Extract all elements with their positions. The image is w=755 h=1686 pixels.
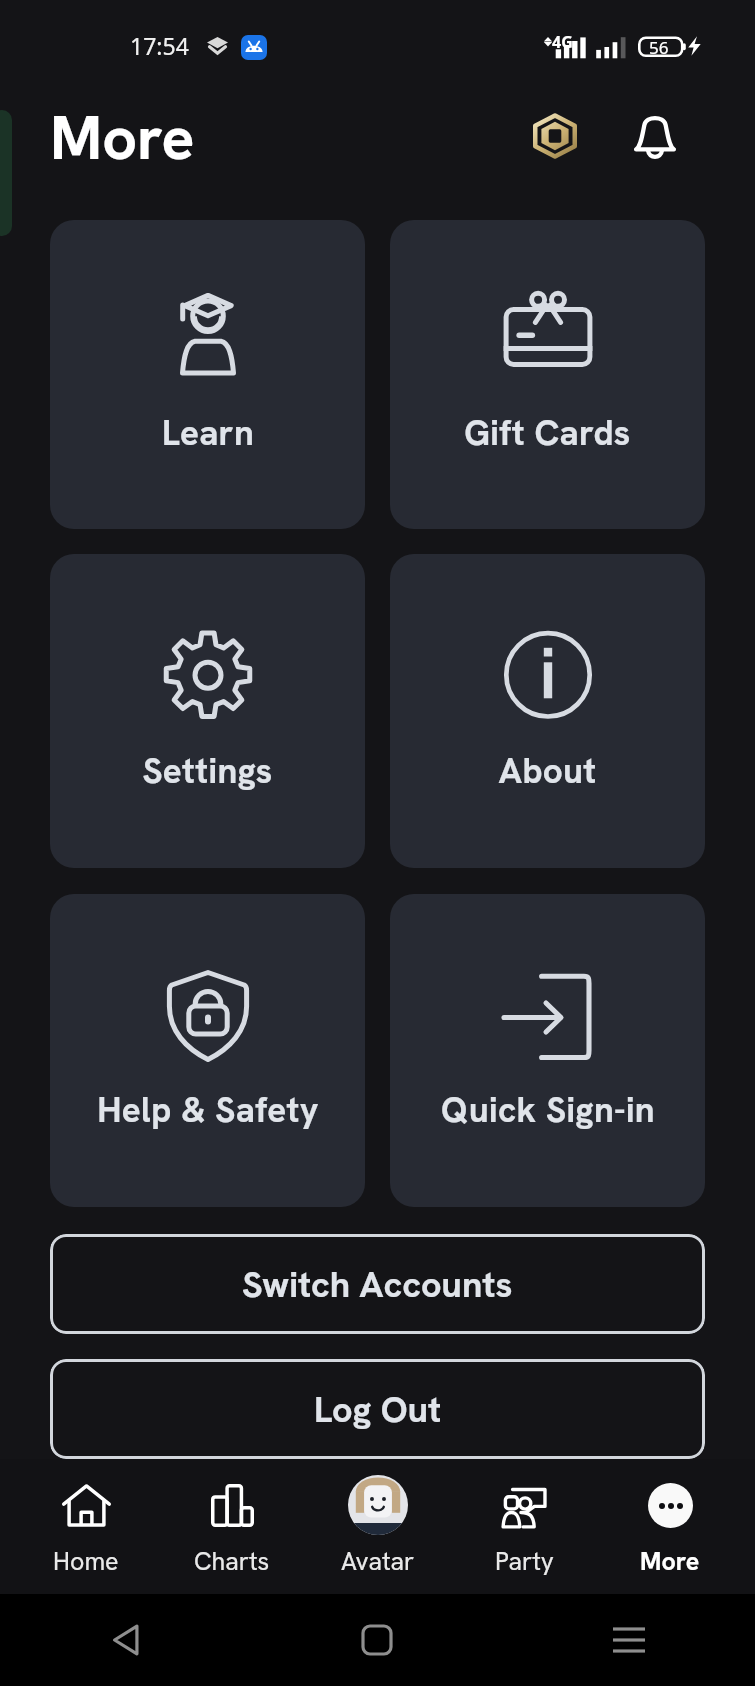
staticText: Quick Sign-in <box>441 1087 655 1133</box>
button[interactable]: About <box>390 554 705 868</box>
staticText: Charts <box>194 1545 270 1578</box>
staticText: Settings <box>142 748 273 794</box>
button[interactable]: Charts <box>159 1459 305 1594</box>
staticText: Party <box>495 1545 554 1578</box>
button[interactable]: Avatar <box>305 1459 451 1594</box>
staticText: 17:54 <box>130 30 189 61</box>
button[interactable]: Party <box>451 1459 597 1594</box>
button[interactable]: Notifications <box>618 99 691 172</box>
button[interactable]: Log Out <box>50 1359 705 1459</box>
button[interactable]: Robux balance <box>518 99 591 172</box>
staticText: Help & Safety <box>97 1087 319 1133</box>
staticText: Log Out <box>314 1386 442 1433</box>
staticText: Avatar <box>341 1545 415 1578</box>
button[interactable]: More <box>597 1459 743 1594</box>
staticText: 56 <box>649 36 669 59</box>
staticText: More <box>640 1545 700 1578</box>
button[interactable]: Home <box>12 1459 159 1594</box>
staticText: Learn <box>162 410 254 456</box>
staticText: Switch Accounts <box>242 1261 513 1308</box>
button[interactable]: Help & Safety <box>50 894 365 1207</box>
staticText: 4G <box>552 31 573 53</box>
staticText: Home <box>53 1545 119 1578</box>
staticText: More <box>50 98 195 177</box>
button[interactable]: Learn <box>50 220 365 529</box>
button[interactable]: Settings <box>50 554 365 868</box>
staticText: About <box>498 748 597 794</box>
staticText: Gift Cards <box>464 410 631 456</box>
button[interactable]: Switch Accounts <box>50 1234 705 1334</box>
button[interactable]: Gift Cards <box>390 220 705 529</box>
button[interactable]: Quick Sign-in <box>390 894 705 1207</box>
